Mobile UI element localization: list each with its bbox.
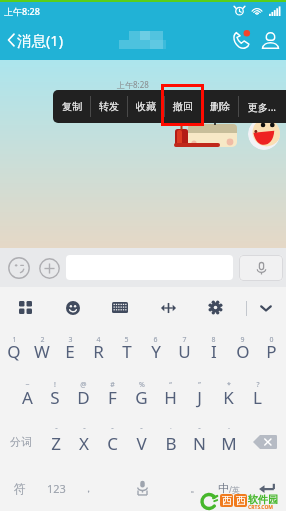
staticText: W <box>34 340 50 363</box>
button[interactable]: ? <box>243 373 272 419</box>
button[interactable]: Voice call <box>224 19 256 60</box>
button[interactable]: 4 <box>84 328 112 373</box>
button[interactable]: 123 <box>39 465 73 511</box>
staticText: X <box>79 432 89 455</box>
button[interactable]: ˙ <box>156 419 185 465</box>
staticText: @ <box>80 380 87 390</box>
button[interactable]: ˇ <box>185 419 214 465</box>
staticText: H <box>164 386 177 409</box>
button[interactable]: 3 <box>56 328 84 373</box>
staticText: R <box>93 340 104 363</box>
staticText: 3 <box>68 335 73 345</box>
button[interactable]: 复制 <box>53 90 90 123</box>
staticText: 西 <box>236 494 246 507</box>
staticText: 。 <box>190 481 201 495</box>
staticText: 软件园 <box>248 493 278 506</box>
button[interactable]: ~ <box>13 373 41 419</box>
staticText: ! <box>54 380 56 390</box>
staticText: 6 <box>153 335 158 345</box>
button[interactable]: 收藏 <box>128 90 164 123</box>
staticText: ˙ <box>170 426 172 436</box>
button[interactable]: * <box>214 373 243 419</box>
staticText: 1 <box>12 335 17 345</box>
staticText: 中 <box>218 481 229 495</box>
staticText: M <box>221 432 237 455</box>
staticText: 更多... <box>248 100 277 114</box>
button[interactable]: Keyboard tool <box>243 287 286 328</box>
button[interactable]: Backspace <box>243 419 286 465</box>
staticText: ˋ <box>228 426 230 436</box>
staticText: I <box>211 340 217 363</box>
staticText: 西 <box>222 494 232 507</box>
button[interactable]: ” <box>185 373 214 419</box>
staticText: L <box>253 386 262 409</box>
staticText: ~ <box>25 380 30 390</box>
button[interactable]: Keyboard tool <box>145 287 191 328</box>
button[interactable]: 0 <box>257 328 286 373</box>
staticText: ˇ <box>55 426 58 436</box>
button[interactable]: Keyboard tool <box>2 287 48 328</box>
staticText: # <box>110 380 115 390</box>
button[interactable]: Enter <box>247 465 286 511</box>
staticText: ” <box>198 380 201 390</box>
staticText: F <box>108 386 117 409</box>
button[interactable]: 删除 <box>202 90 238 123</box>
button[interactable]: Add <box>35 254 63 282</box>
button[interactable]: ˇ <box>70 419 98 465</box>
staticText: ， <box>83 481 94 495</box>
button[interactable]: 。 <box>180 465 211 511</box>
staticText: 123 <box>47 481 66 496</box>
staticText: /英 <box>229 484 240 495</box>
button[interactable]: 消息(1) <box>6 19 63 60</box>
button[interactable]: 分词 <box>0 419 42 465</box>
staticText: 4 <box>96 335 101 345</box>
button[interactable]: 1 <box>0 328 28 373</box>
button[interactable]: ˇ <box>98 419 127 465</box>
button[interactable]: @ <box>69 373 98 419</box>
staticText: E <box>65 340 75 363</box>
button[interactable]: Voice input <box>104 465 180 511</box>
staticText: 删除 <box>210 100 230 113</box>
button[interactable]: Profile <box>256 19 284 60</box>
staticText: Y <box>151 340 161 363</box>
button[interactable]: # <box>98 373 127 419</box>
button[interactable]: Emoji <box>5 254 33 282</box>
button[interactable]: 中 <box>211 465 247 511</box>
button[interactable]: ˇ <box>42 419 70 465</box>
button[interactable]: Keyboard tool <box>50 287 96 328</box>
button[interactable]: ˇ <box>127 419 156 465</box>
button[interactable]: % <box>127 373 156 419</box>
button[interactable]: 转发 <box>91 90 127 123</box>
staticText: 复制 <box>62 100 82 113</box>
staticText: ˇ <box>83 426 86 436</box>
button[interactable]: Keyboard tool <box>97 287 143 328</box>
staticText: ˇ <box>140 426 143 436</box>
staticText: 上午8:28 <box>4 5 40 17</box>
staticText: N <box>193 432 206 455</box>
button[interactable]: 2 <box>28 328 56 373</box>
button[interactable]: “ <box>156 373 185 419</box>
button[interactable]: ! <box>41 373 69 419</box>
button[interactable]: Avatar <box>248 118 280 150</box>
staticText: “ <box>169 380 172 390</box>
staticText: 符 <box>14 481 26 496</box>
button[interactable]: 6 <box>141 328 170 373</box>
button[interactable]: 9 <box>228 328 257 373</box>
button[interactable]: Keyboard tool <box>192 287 238 328</box>
staticText: B <box>165 432 177 455</box>
button[interactable]: 符 <box>0 465 39 511</box>
button[interactable]: 更多... <box>239 90 286 123</box>
button[interactable]: 撤回 <box>165 90 201 123</box>
staticText: J <box>197 386 202 409</box>
button[interactable]: Voice message <box>239 255 283 281</box>
staticText: 分词 <box>10 435 32 449</box>
staticText: K <box>223 386 234 409</box>
button[interactable]: 5 <box>112 328 141 373</box>
button[interactable]: ˋ <box>214 419 243 465</box>
staticText: 消息(1) <box>17 30 63 50</box>
button[interactable]: 8 <box>199 328 228 373</box>
button[interactable]: 7 <box>170 328 199 373</box>
staticText: * <box>227 380 231 390</box>
